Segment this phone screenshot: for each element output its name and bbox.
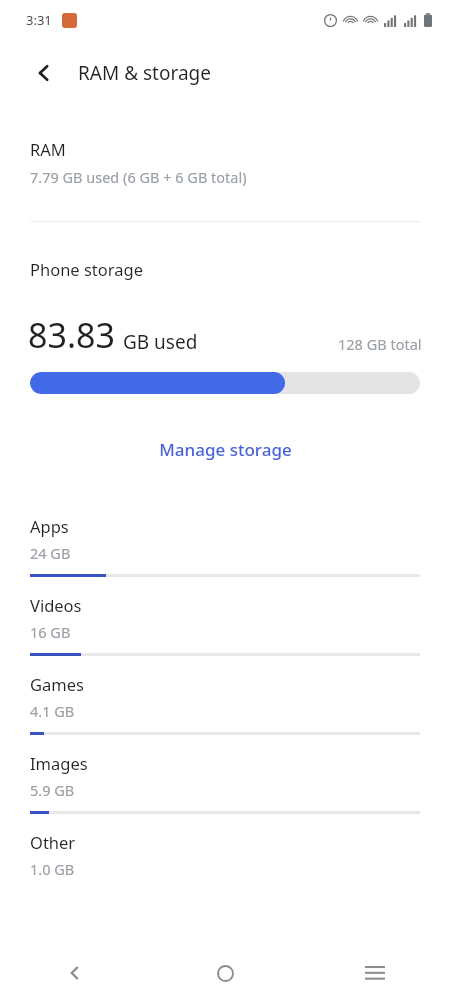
- staticText: Images: [30, 752, 88, 774]
- staticText: 1.0 GB: [30, 859, 75, 879]
- staticText: Games: [30, 673, 84, 695]
- staticText: GB used: [123, 329, 198, 355]
- button[interactable]: Manage storage: [141, 432, 310, 467]
- staticText: 5.9 GB: [30, 780, 75, 800]
- button[interactable]: Back: [22, 51, 66, 95]
- staticText: 3:31: [26, 11, 52, 29]
- staticText: RAM & storage: [78, 60, 211, 86]
- button[interactable]: Videos: [0, 594, 450, 673]
- staticText: Manage storage: [159, 438, 292, 461]
- button[interactable]: Games: [0, 673, 450, 752]
- staticText: 4.1 GB: [30, 701, 75, 721]
- button[interactable]: Back: [0, 946, 150, 1000]
- staticText: Apps: [30, 515, 69, 537]
- staticText: Other: [30, 831, 76, 853]
- staticText: 16 GB: [30, 622, 71, 642]
- button[interactable]: Home: [150, 946, 300, 1000]
- button[interactable]: Recent apps: [300, 946, 450, 1000]
- staticText: Phone storage: [30, 258, 143, 280]
- button[interactable]: Other: [0, 831, 450, 902]
- staticText: 83.83: [28, 312, 115, 358]
- staticText: 128 GB total: [338, 334, 422, 354]
- button[interactable]: Apps: [0, 515, 450, 594]
- button[interactable]: Images: [0, 752, 450, 831]
- staticText: 24 GB: [30, 543, 71, 563]
- staticText: 7.79 GB used (6 GB + 6 GB total): [30, 167, 247, 187]
- staticText: Videos: [30, 594, 82, 616]
- staticText: RAM: [30, 138, 66, 160]
